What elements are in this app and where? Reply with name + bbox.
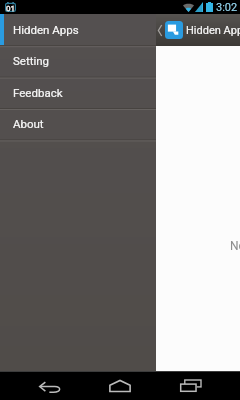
button[interactable]: About — [0, 108, 156, 139]
staticText: About — [13, 117, 44, 130]
staticText: 01 — [6, 4, 15, 13]
button[interactable]: Hidden Apps — [0, 14, 156, 45]
staticText: Hidden Apps — [13, 23, 79, 36]
button[interactable]: Home — [96, 371, 144, 400]
staticText: Feedback — [13, 86, 63, 99]
button[interactable]: Recent apps — [166, 371, 214, 400]
staticText: Setting — [13, 54, 50, 67]
button[interactable]: Back — [26, 371, 74, 400]
staticText: No hidden apps — [230, 239, 240, 253]
button[interactable]: Setting — [0, 45, 156, 76]
staticText: 3:02 — [216, 1, 238, 14]
staticText: Hidden Apps — [186, 24, 240, 37]
button[interactable]: Feedback — [0, 77, 156, 108]
